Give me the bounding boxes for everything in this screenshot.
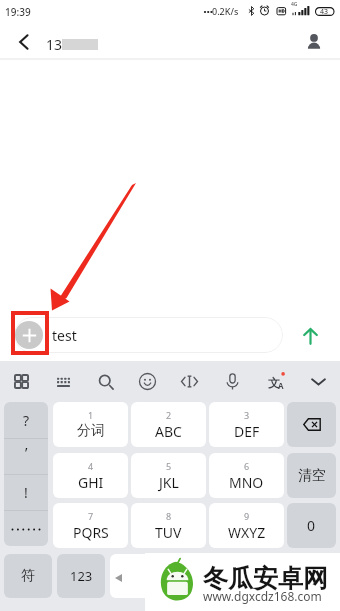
button[interactable]: 7 PQRS — [53, 503, 128, 548]
staticText: JKL — [159, 473, 179, 492]
button[interactable]: 清空 — [287, 453, 336, 498]
staticText: 19:39 — [5, 5, 31, 19]
button[interactable]: Send — [295, 320, 326, 351]
button[interactable]: Voice input — [211, 361, 254, 402]
staticText: 4 — [88, 460, 94, 472]
button[interactable]: Hide keyboard — [297, 361, 340, 402]
staticText: test — [52, 326, 77, 345]
staticText: 2 — [166, 409, 172, 421]
button[interactable]: 123 — [57, 554, 105, 598]
staticText: www.dgxcdz168.com — [203, 588, 322, 604]
button[interactable]: Backspace — [287, 402, 336, 447]
button[interactable]: 6 MNO — [209, 453, 284, 498]
button[interactable]: 符 — [4, 554, 52, 598]
button[interactable]: 9 WXYZ — [209, 503, 284, 548]
button[interactable]: 0 — [287, 503, 336, 548]
button[interactable]: Translate — [254, 361, 297, 402]
button[interactable]: Back — [6, 24, 42, 60]
staticText: WXYZ — [228, 523, 266, 542]
button[interactable]: Apps — [0, 361, 42, 402]
staticText: 3 — [244, 409, 250, 421]
staticText: PQRS — [73, 523, 109, 542]
button[interactable]: Space — [110, 554, 284, 598]
staticText: ’ — [25, 443, 28, 462]
staticText: GHI — [78, 473, 104, 492]
button[interactable]: 5 JKL — [131, 453, 206, 498]
button[interactable]: 2 ABC — [131, 402, 206, 447]
button[interactable]: 1 分词 — [53, 402, 128, 447]
staticText: 文 — [268, 375, 280, 390]
button[interactable]: Enter — [288, 554, 336, 598]
staticText: 8 — [166, 510, 172, 522]
button[interactable]: Search — [84, 361, 126, 402]
staticText: 7 — [88, 510, 94, 522]
staticText: ! — [24, 483, 28, 502]
button[interactable]: …… — [4, 510, 48, 546]
staticText: DEF — [234, 422, 260, 441]
button[interactable]: 4 GHI — [53, 453, 128, 498]
staticText: 13 — [46, 35, 63, 54]
button[interactable]: ’ — [4, 438, 48, 474]
staticText: 9 — [244, 510, 250, 522]
button[interactable]: 8 TUV — [131, 503, 206, 548]
staticText: MNO — [229, 473, 264, 492]
button[interactable]: 3 DEF — [209, 402, 284, 447]
staticText: 4G — [291, 1, 298, 8]
button[interactable]: ? — [4, 402, 48, 438]
staticText: 43 — [320, 7, 329, 17]
staticText: 分词 — [77, 422, 105, 440]
button[interactable]: Add attachment — [15, 321, 43, 349]
staticText: 5 — [166, 460, 172, 472]
staticText: 清空 — [298, 467, 326, 485]
staticText: ABC — [155, 422, 182, 441]
button[interactable]: Clipboard — [168, 361, 211, 402]
button[interactable]: Keyboard layout — [42, 361, 84, 402]
staticText: 0.2K/s — [212, 5, 239, 17]
staticText: 符 — [21, 567, 35, 585]
staticText: 6 — [244, 460, 250, 472]
staticText: TUV — [155, 523, 182, 542]
button[interactable]: Contact info — [296, 24, 332, 60]
staticText: 123 — [70, 567, 93, 585]
staticText: 1 — [88, 409, 94, 421]
staticText: 冬瓜安卓网 — [203, 563, 328, 594]
staticText: ? — [23, 411, 30, 430]
button[interactable]: ! — [4, 474, 48, 510]
staticText: 0 — [307, 516, 316, 535]
button[interactable]: Emoji — [126, 361, 168, 402]
button[interactable]: test — [14, 317, 283, 353]
staticText: A — [278, 380, 284, 391]
